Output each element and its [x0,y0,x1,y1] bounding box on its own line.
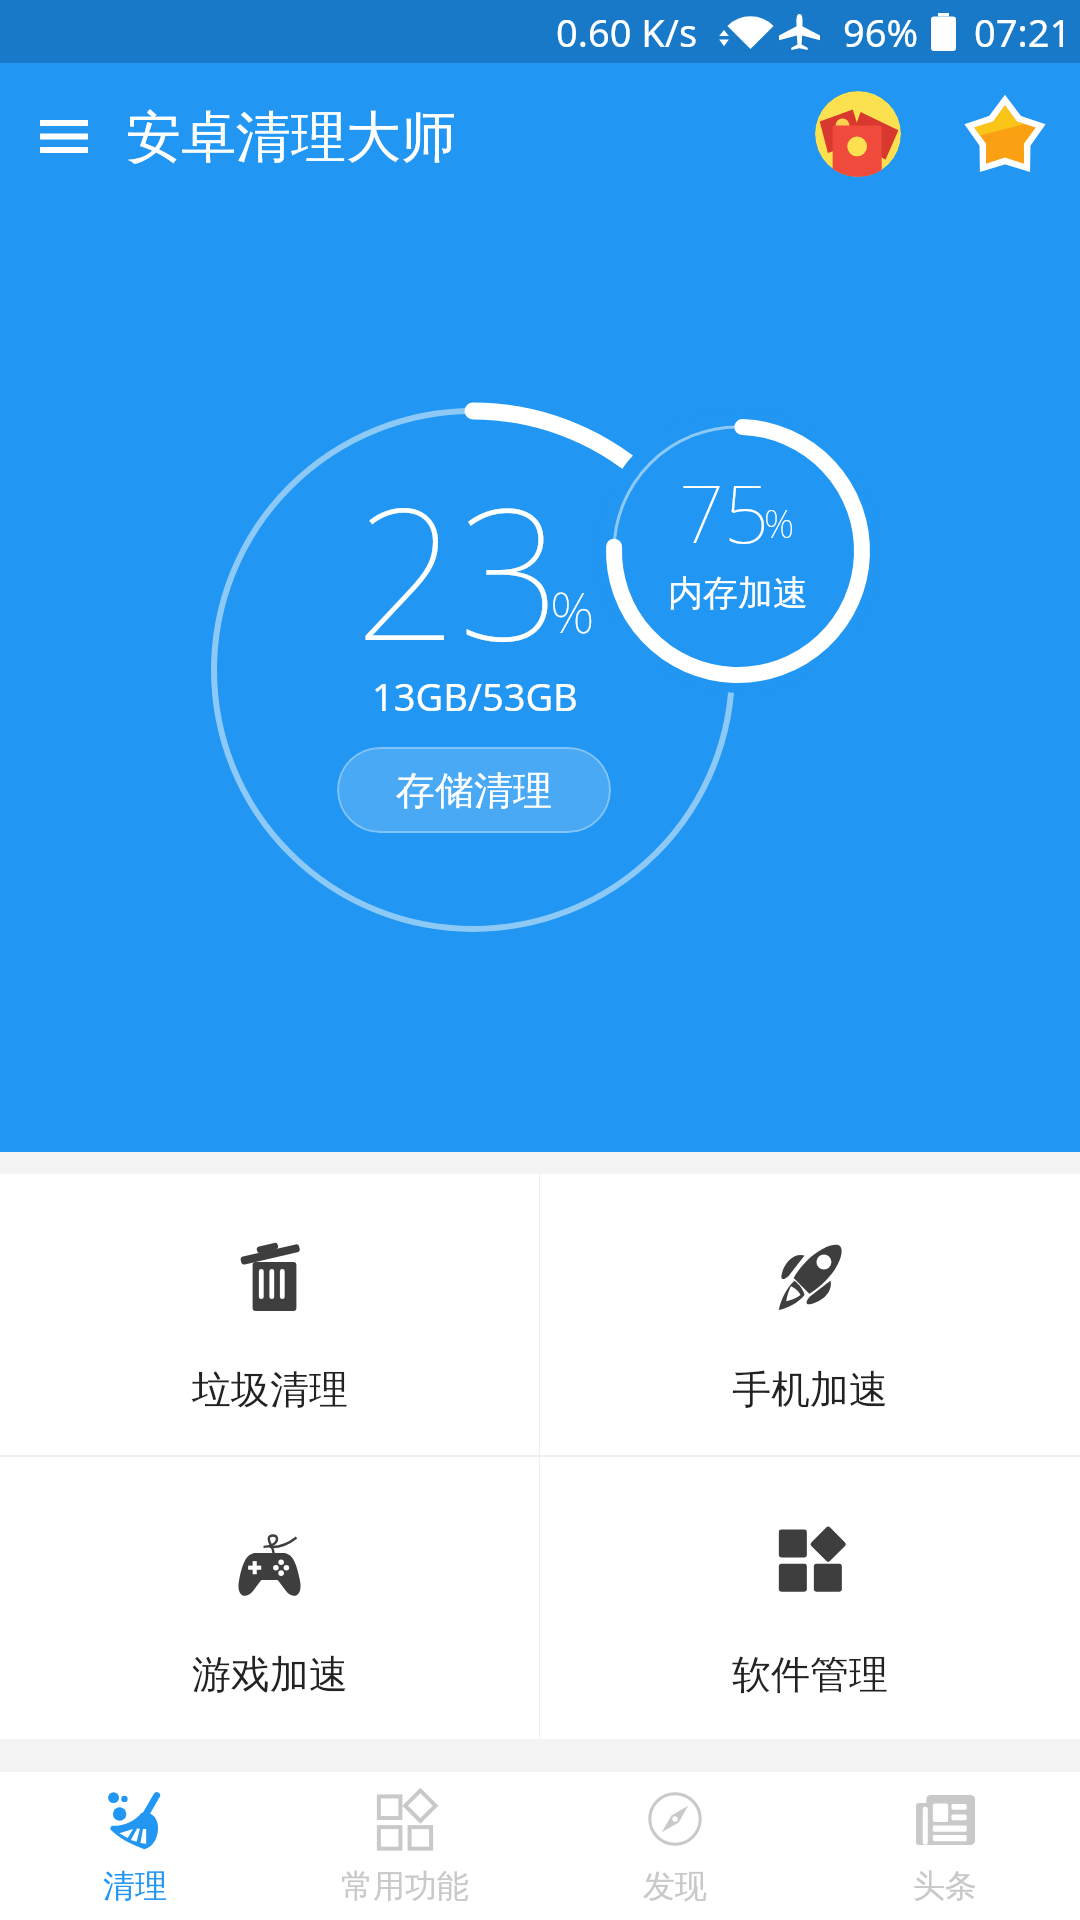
button[interactable]: 清理 [0,1772,270,1920]
button[interactable]: 发现 [540,1772,810,1920]
staticText: 0.60 K/s [556,6,698,58]
staticText: 手机加速 [732,1365,888,1414]
button[interactable]: 常用功能 [270,1772,540,1920]
button[interactable]: Favorite [953,84,1057,188]
staticText: 存储清理 [396,766,552,815]
button[interactable]: 内存加速 [607,420,869,682]
button[interactable]: 垃圾清理 [0,1174,539,1455]
staticText: 常用功能 [341,1866,469,1906]
button[interactable]: 软件管理 [540,1457,1080,1739]
button[interactable]: 手机加速 [540,1174,1080,1455]
staticText: 75 [679,459,770,567]
staticText: 垃圾清理 [192,1365,348,1414]
staticText: 软件管理 [732,1650,888,1699]
staticText: 96% [843,6,919,58]
button[interactable]: 游戏加速 [0,1457,539,1739]
staticText: 07:21 [974,6,1072,58]
button[interactable]: 安卓清理大师 [126,103,456,172]
staticText: % [550,573,595,649]
button[interactable]: 存储清理 [337,747,611,833]
staticText: 游戏加速 [192,1650,348,1699]
staticText: 13GB/53GB [372,670,578,722]
staticText: 头条 [913,1866,977,1906]
staticText: 清理 [103,1866,167,1906]
staticText: % [764,497,795,549]
staticText: 安卓清理大师 [126,103,456,172]
staticText: 内存加速 [668,571,808,615]
staticText: 23 [355,447,562,694]
button[interactable]: 头条 [810,1772,1080,1920]
staticText: 发现 [643,1866,707,1906]
button[interactable]: Red packet [806,82,910,186]
button[interactable]: Menu [16,84,112,188]
